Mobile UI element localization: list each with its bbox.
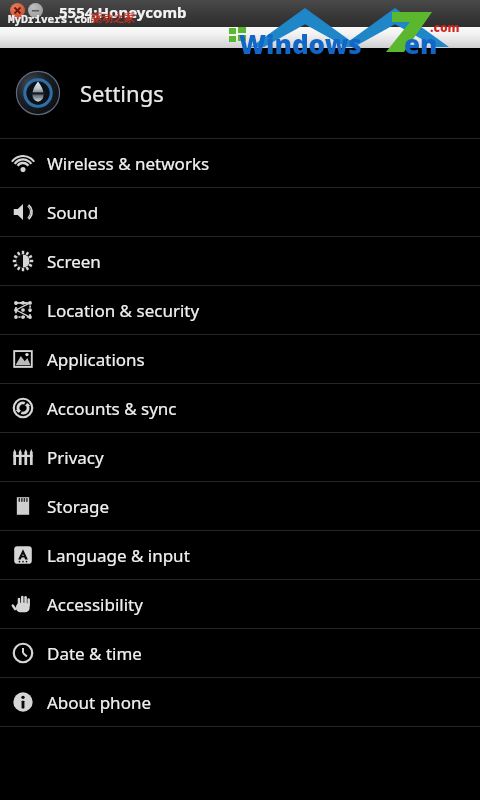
- button[interactable]: Privacy: [0, 433, 480, 481]
- staticText: Location & security: [47, 299, 200, 322]
- staticText: Language & input: [47, 544, 190, 567]
- staticText: Settings: [80, 78, 164, 108]
- button[interactable]: Accounts & sync: [0, 384, 480, 432]
- button[interactable]: Date & time: [0, 629, 480, 677]
- staticText: Sound: [47, 201, 99, 224]
- staticText: en: [404, 26, 438, 61]
- button[interactable]: Location & security: [0, 286, 480, 334]
- button[interactable]: Storage: [0, 482, 480, 530]
- button[interactable]: About phone: [0, 678, 480, 726]
- button[interactable]: Language & input: [0, 531, 480, 579]
- button[interactable]: Wireless & networks: [0, 139, 480, 187]
- staticText: About phone: [47, 691, 152, 714]
- staticText: 5554:Honeycomb: [59, 2, 187, 22]
- staticText: Accessibility: [47, 593, 143, 616]
- staticText: Privacy: [47, 446, 104, 469]
- button[interactable]: Accessibility: [0, 580, 480, 628]
- staticText: 驱动之家: [91, 11, 135, 25]
- staticText: Wireless & networks: [47, 152, 210, 175]
- staticText: Windows: [239, 26, 362, 61]
- staticText: Date & time: [47, 642, 142, 665]
- staticText: .com: [430, 19, 460, 35]
- staticText: MyDrivers.com: [8, 11, 94, 26]
- button[interactable]: Applications: [0, 335, 480, 383]
- staticText: Storage: [47, 495, 110, 518]
- button[interactable]: Close: [10, 3, 25, 18]
- staticText: Applications: [47, 348, 145, 371]
- staticText: Screen: [47, 250, 101, 273]
- button[interactable]: Sound: [0, 188, 480, 236]
- button[interactable]: Minimize: [28, 3, 43, 18]
- button[interactable]: Screen: [0, 237, 480, 285]
- staticText: Accounts & sync: [47, 397, 177, 420]
